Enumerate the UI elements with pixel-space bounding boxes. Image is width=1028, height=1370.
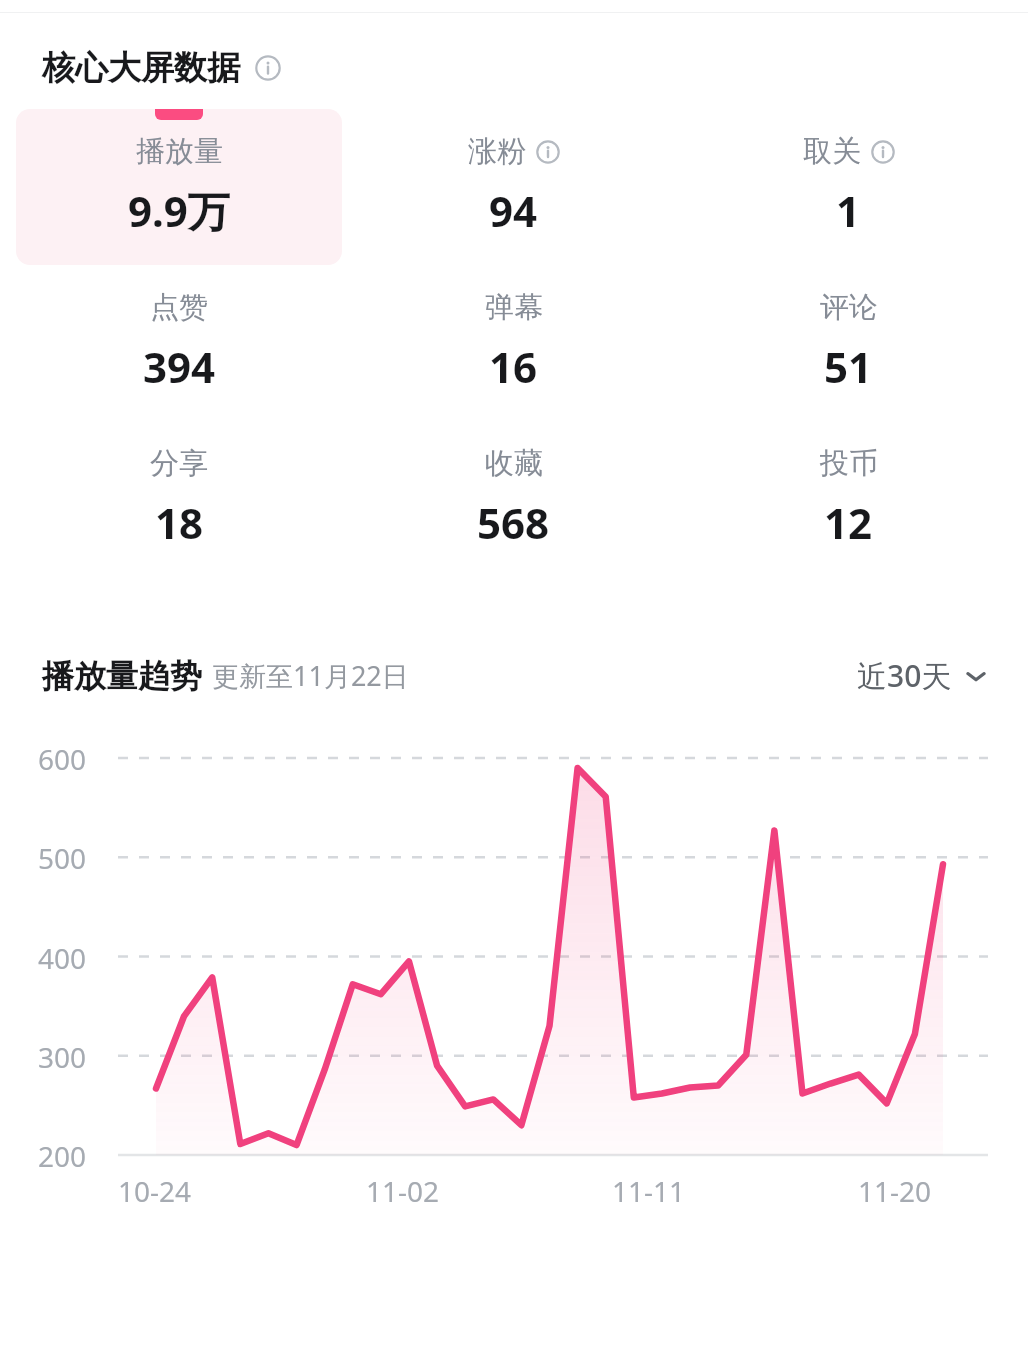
button[interactable]: 收藏 [342, 421, 685, 577]
staticText: 评论 [820, 289, 878, 326]
staticText: 600 [38, 740, 87, 778]
staticText: 51 [824, 338, 873, 395]
button[interactable]: 点赞 [16, 265, 342, 421]
staticText: 200 [38, 1137, 87, 1175]
staticText: 9.9万 [128, 182, 230, 239]
staticText: 18 [155, 494, 204, 551]
staticText: 点赞 [150, 289, 208, 326]
button[interactable]: 近30天 [857, 655, 988, 696]
button[interactable]: 弹幕 [342, 265, 685, 421]
staticText: 近30天 [857, 655, 952, 696]
staticText: 94 [489, 182, 538, 239]
staticText: 分享 [150, 445, 208, 482]
staticText: 播放量 [136, 133, 223, 170]
button[interactable]: 分享 [16, 421, 342, 577]
button[interactable]: 播放量 [16, 109, 342, 265]
staticText: 11-02 [366, 1172, 440, 1210]
staticText: 400 [38, 939, 87, 977]
staticText: 播放量趋势 [42, 656, 202, 696]
staticText: 12 [824, 494, 873, 551]
staticText: 核心大屏数据 [42, 47, 240, 89]
button[interactable]: 数据说明 [254, 54, 282, 82]
staticText: 10-24 [118, 1172, 192, 1210]
staticText: 11-11 [612, 1172, 686, 1210]
staticText: 11-20 [858, 1172, 932, 1210]
staticText: 500 [38, 839, 87, 877]
staticText: 1 [836, 182, 861, 239]
staticText: 300 [38, 1038, 87, 1076]
staticText: 394 [143, 338, 216, 395]
staticText: 取关 [803, 133, 861, 170]
button[interactable]: 涨粉 [342, 109, 685, 265]
staticText: 弹幕 [485, 289, 543, 326]
button[interactable]: 投币 [685, 421, 1012, 577]
staticText: 投币 [820, 445, 878, 482]
button[interactable]: 取关 [685, 109, 1012, 265]
staticText: 涨粉 [468, 133, 526, 170]
staticText: 568 [477, 494, 550, 551]
staticText: 16 [489, 338, 538, 395]
button[interactable]: 评论 [685, 265, 1012, 421]
staticText: 更新至11月22日 [212, 657, 409, 694]
staticText: 收藏 [485, 445, 543, 482]
